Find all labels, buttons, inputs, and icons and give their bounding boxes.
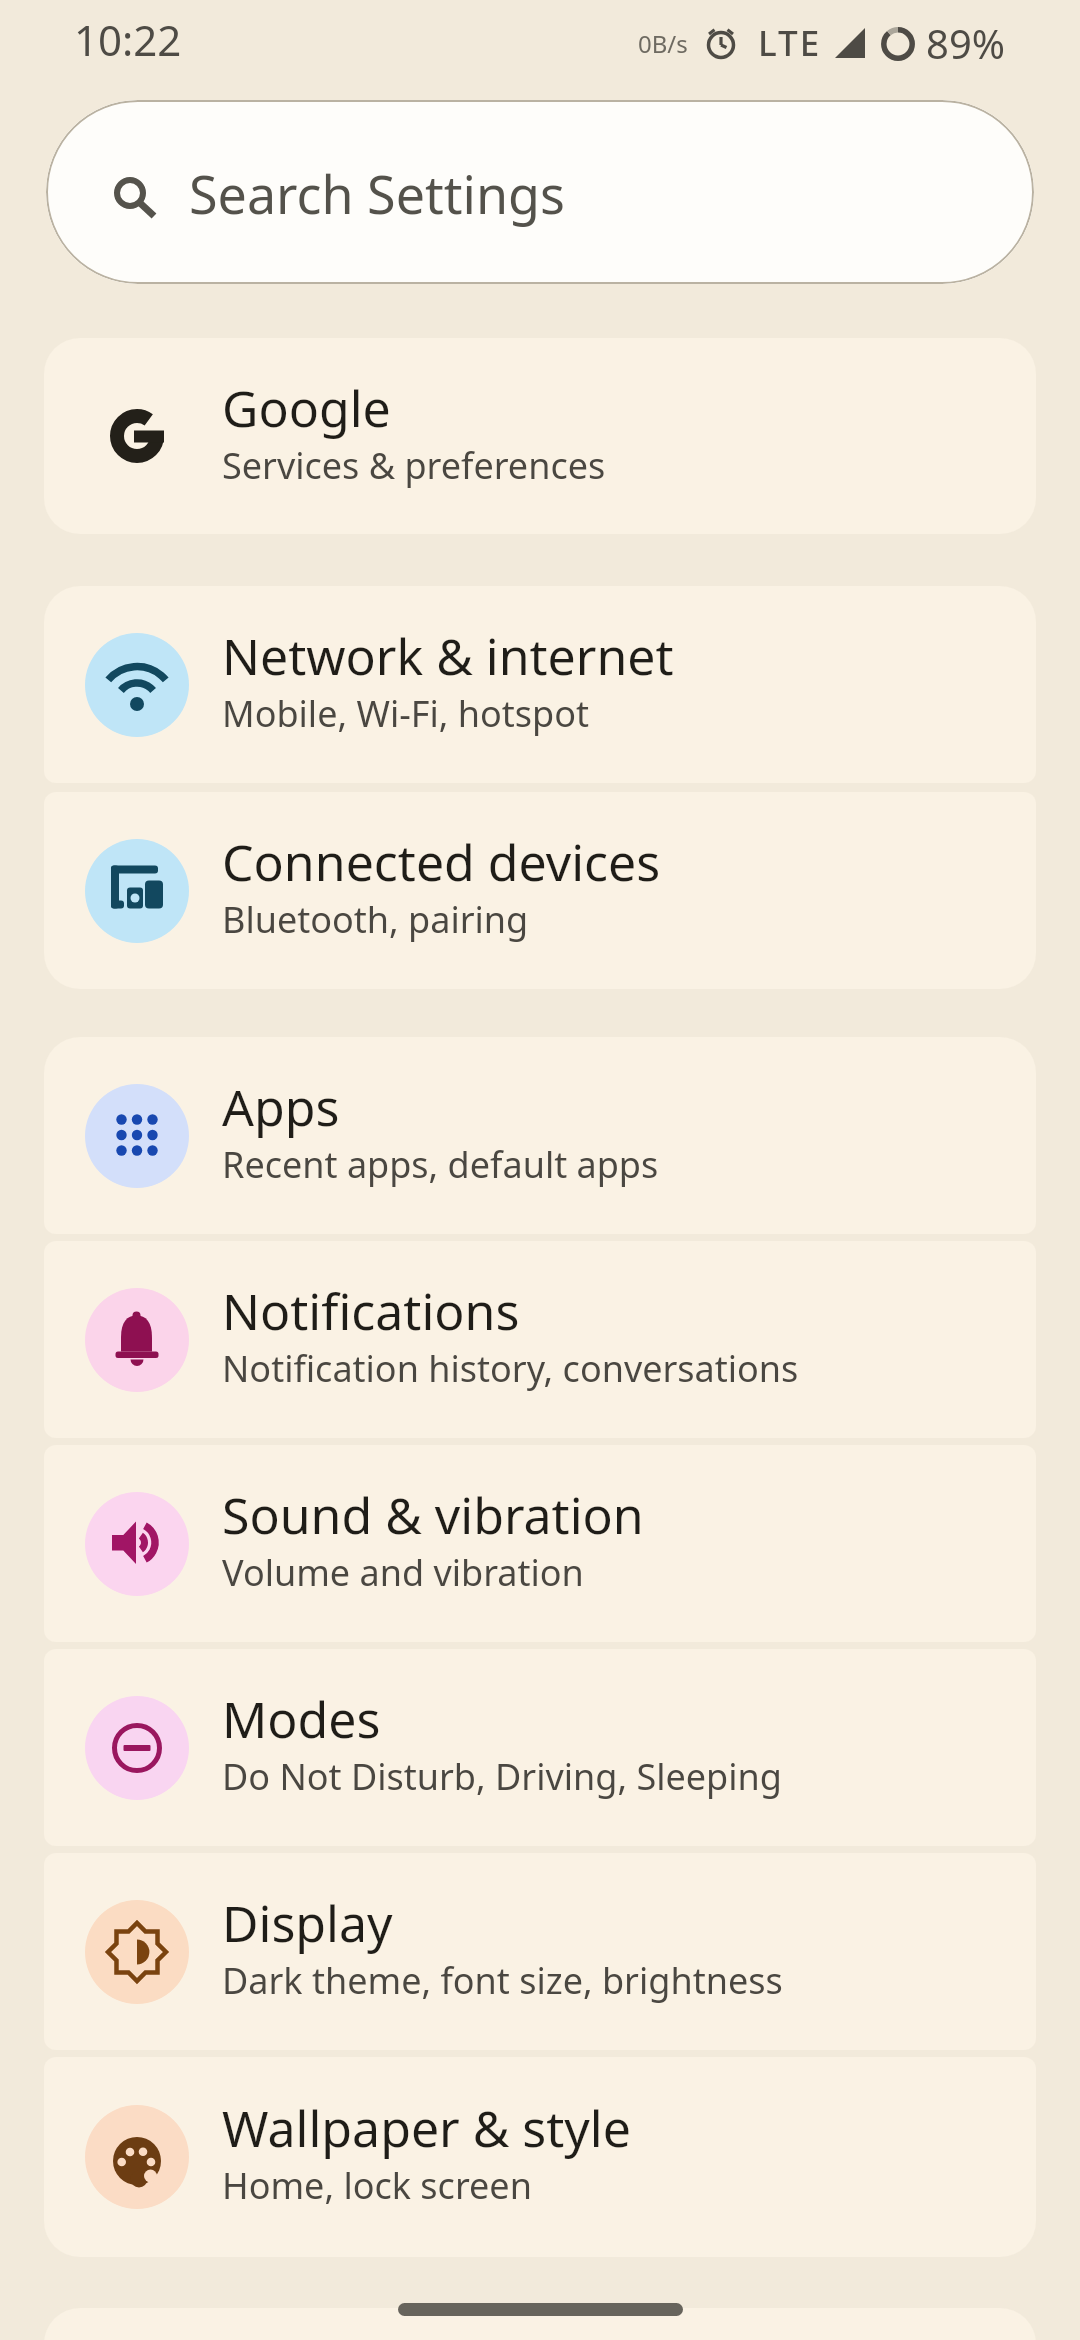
button[interactable]: Notifications <box>44 1241 1036 1438</box>
button[interactable]: Wallpaper & style <box>44 2057 1036 2257</box>
staticText: Mobile, Wi-Fi, hotspot <box>222 689 589 738</box>
staticText: 0B/s <box>638 27 688 60</box>
staticText: Do Not Disturb, Driving, Sleeping <box>222 1752 782 1801</box>
staticText: Connected devices <box>222 828 661 896</box>
staticText: Sound & vibration <box>222 1481 644 1549</box>
button[interactable]: Display <box>44 1853 1036 2050</box>
staticText: Google <box>222 374 391 442</box>
staticText: Apps <box>222 1073 340 1141</box>
button[interactable]: Network & internet <box>44 586 1036 783</box>
staticText: Notifications <box>222 1277 520 1345</box>
button[interactable]: Modes <box>44 1649 1036 1846</box>
staticText: 89% <box>926 16 1005 70</box>
staticText: Notification history, conversations <box>222 1344 799 1393</box>
staticText: Modes <box>222 1685 381 1753</box>
staticText: Bluetooth, pairing <box>222 895 529 944</box>
button[interactable]: Connected devices <box>44 792 1036 989</box>
button[interactable]: Apps <box>44 1037 1036 1234</box>
button[interactable]: Sound & vibration <box>44 1445 1036 1642</box>
button[interactable]: Google <box>44 338 1036 534</box>
staticText: LTE <box>758 19 822 67</box>
staticText: Dark theme, font size, brightness <box>222 1956 783 2005</box>
staticText: 10:22 <box>74 11 182 68</box>
staticText: Volume and vibration <box>222 1548 584 1597</box>
staticText: Services & preferences <box>222 441 606 490</box>
staticText: Recent apps, default apps <box>222 1140 659 1189</box>
staticText: Home, lock screen <box>222 2161 532 2210</box>
staticText: Wallpaper & style <box>222 2094 631 2162</box>
staticText: Search Settings <box>189 158 565 229</box>
staticText: Display <box>222 1889 393 1957</box>
button[interactable]: Search Settings <box>46 100 1034 284</box>
staticText: Network & internet <box>222 622 674 690</box>
